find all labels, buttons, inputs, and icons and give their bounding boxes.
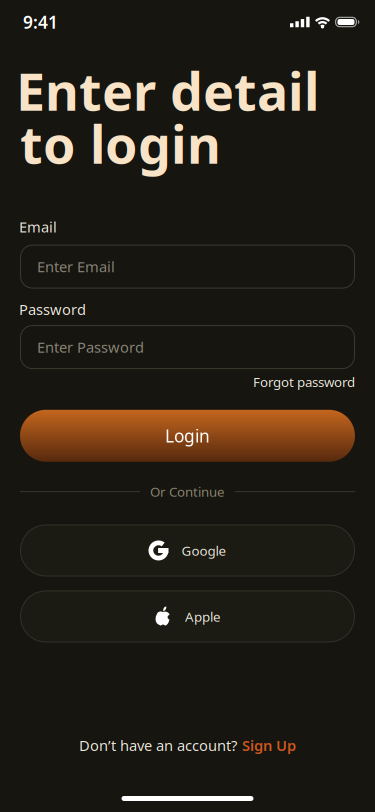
button[interactable]: Google bbox=[20, 524, 355, 576]
button[interactable]: Apple bbox=[20, 590, 355, 642]
staticText: Sign Up bbox=[242, 735, 296, 755]
staticText: Login bbox=[165, 424, 210, 447]
staticText: to login bbox=[20, 109, 221, 178]
staticText: Don’t have an account? bbox=[79, 735, 237, 755]
staticText: Password bbox=[19, 300, 86, 319]
staticText: Apple bbox=[185, 608, 221, 625]
staticText: Enter Password bbox=[37, 337, 144, 357]
staticText: Enter Email bbox=[37, 257, 115, 276]
button[interactable]: Login bbox=[20, 410, 355, 462]
button[interactable]: Enter Password bbox=[20, 325, 355, 369]
button[interactable]: Enter Email bbox=[20, 245, 355, 289]
staticText: 9:41 bbox=[23, 10, 58, 33]
button[interactable]: Forgot password bbox=[253, 373, 355, 391]
staticText: Google bbox=[181, 542, 226, 559]
staticText: Forgot password bbox=[253, 373, 355, 391]
staticText: Email bbox=[19, 217, 57, 237]
staticText: Enter detail bbox=[16, 56, 319, 125]
button[interactable]: Sign Up bbox=[242, 735, 296, 755]
staticText: Or Continue bbox=[150, 483, 225, 500]
